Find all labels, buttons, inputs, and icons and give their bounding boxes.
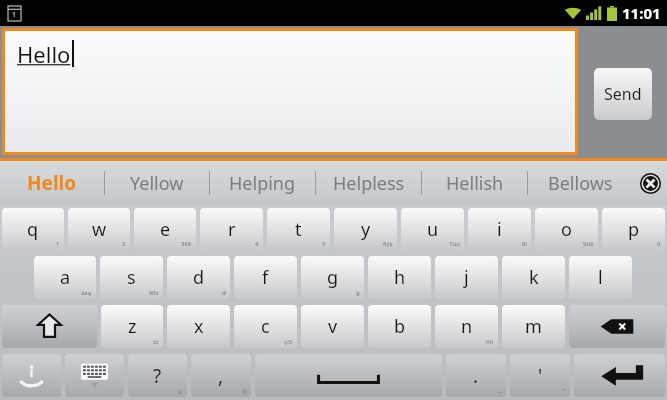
staticText: Yellow <box>130 171 184 196</box>
staticText: 5 <box>322 240 326 248</box>
button[interactable]: q <box>2 208 64 250</box>
button[interactable]: Helping <box>210 161 315 205</box>
staticText: ñń <box>486 338 494 346</box>
button[interactable]: Space <box>255 354 442 397</box>
button[interactable]: Close suggestions <box>633 161 667 205</box>
staticText: o <box>561 217 572 242</box>
staticText: m <box>525 314 542 339</box>
staticText: 2 <box>122 240 126 248</box>
button[interactable]: ? <box>128 354 187 397</box>
staticText: h <box>394 265 406 290</box>
staticText: i <box>497 217 502 242</box>
staticText: w <box>92 217 107 242</box>
staticText: e <box>160 217 171 242</box>
staticText: g <box>327 265 339 290</box>
button[interactable]: . <box>446 354 506 397</box>
button[interactable]: Hello <box>5 31 575 152</box>
staticText: ' <box>538 363 543 389</box>
staticText: Helping <box>229 171 296 196</box>
staticText: 6ýÿ <box>383 240 393 248</box>
button[interactable]: Helpless <box>316 161 421 205</box>
staticText: s <box>127 265 136 290</box>
staticText: p <box>628 217 640 242</box>
button[interactable]: f <box>234 256 297 299</box>
button[interactable]: Yellow <box>105 161 209 205</box>
button[interactable]: h <box>368 256 431 299</box>
staticText: ? <box>153 363 162 389</box>
staticText: àáą <box>81 289 92 297</box>
staticText: … <box>497 387 502 395</box>
staticText: u <box>427 217 439 242</box>
button[interactable]: Enter <box>574 354 665 397</box>
button[interactable]: v <box>301 305 364 348</box>
staticText: Hello <box>27 170 77 196</box>
staticText: r <box>228 217 236 242</box>
staticText: ď <box>222 289 226 297</box>
button[interactable]: t <box>267 208 330 250</box>
staticText: 9öô <box>583 240 594 248</box>
staticText: Hello <box>17 39 71 69</box>
staticText: ğ <box>356 289 360 297</box>
staticText: b <box>394 314 406 339</box>
staticText: y <box>361 217 371 242</box>
button[interactable]: x <box>167 305 230 348</box>
button[interactable]: y <box>334 208 397 250</box>
button[interactable]: Hello <box>0 161 104 205</box>
staticText: 1 <box>56 240 60 248</box>
staticText: z <box>128 314 137 339</box>
staticText: k <box>529 265 539 290</box>
button[interactable]: j <box>435 256 498 299</box>
button[interactable]: n <box>435 305 498 348</box>
staticText: Bellows <box>548 171 613 196</box>
button[interactable]: r <box>200 208 263 250</box>
button[interactable]: w <box>68 208 130 250</box>
staticText: Helpless <box>333 171 405 196</box>
button[interactable]: Bellows <box>528 161 633 205</box>
staticText: a <box>60 265 71 290</box>
staticText: x <box>194 314 204 339</box>
staticText: 0 <box>657 240 661 248</box>
button[interactable]: d <box>167 256 230 299</box>
button[interactable]: a <box>34 256 96 299</box>
button[interactable]: g <box>301 256 364 299</box>
staticText: j <box>464 265 469 290</box>
button[interactable]: Send <box>594 68 652 120</box>
button[interactable]: m <box>502 305 565 348</box>
staticText: çćĉ <box>284 338 293 346</box>
staticText: c <box>261 314 270 339</box>
button[interactable]: c <box>234 305 297 348</box>
staticText: l <box>598 265 603 290</box>
button[interactable]: u <box>401 208 464 250</box>
staticText: q <box>27 217 39 242</box>
staticText: 8ï <box>522 240 527 248</box>
button[interactable]: ' <box>510 354 570 397</box>
button[interactable]: p <box>602 208 665 250</box>
button[interactable]: Hellish <box>422 161 527 205</box>
staticText: n <box>461 314 473 339</box>
staticText: 7úü <box>449 240 460 248</box>
button[interactable]: Emoji <box>2 354 61 397</box>
staticText: v <box>328 314 338 339</box>
staticText: ¡¿ <box>178 387 183 395</box>
button[interactable]: o <box>535 208 598 250</box>
staticText: d <box>193 265 205 290</box>
staticText: () <box>243 387 247 395</box>
staticText: , <box>218 363 224 389</box>
button[interactable]: k <box>502 256 565 299</box>
staticText: 1 <box>12 10 17 20</box>
staticText: žż <box>153 338 159 346</box>
button[interactable]: e <box>134 208 196 250</box>
staticText: Send <box>604 83 642 105</box>
button[interactable]: b <box>368 305 431 348</box>
button[interactable]: i <box>468 208 531 250</box>
staticText: 4 <box>255 240 259 248</box>
button[interactable]: Shift <box>2 305 97 348</box>
button[interactable]: l <box>569 256 632 299</box>
button[interactable]: Backspace <box>569 305 665 348</box>
staticText: " <box>563 387 566 395</box>
staticText: 3€ē <box>181 240 192 248</box>
button[interactable]: , <box>191 354 251 397</box>
button[interactable]: z <box>101 305 163 348</box>
button[interactable]: s <box>100 256 163 299</box>
button[interactable]: Switch keyboard <box>65 354 124 397</box>
